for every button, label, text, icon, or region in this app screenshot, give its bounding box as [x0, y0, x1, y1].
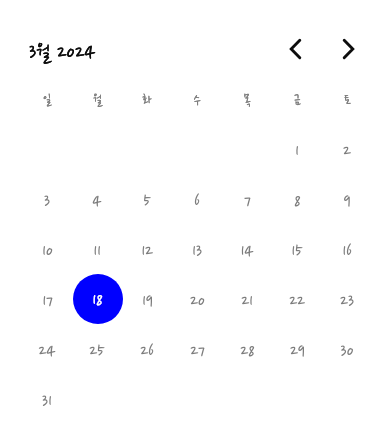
button[interactable]: 26 — [122, 325, 172, 375]
button[interactable]: 6 — [172, 175, 222, 225]
staticText: 19 — [142, 292, 153, 312]
button[interactable]: 21 — [222, 275, 272, 325]
staticText: 11 — [93, 242, 101, 262]
button[interactable]: Next month — [328, 28, 369, 69]
staticText: 23 — [340, 292, 354, 312]
staticText: 5 — [143, 192, 151, 212]
staticText: 10 — [42, 242, 53, 262]
staticText: 목 — [244, 93, 251, 108]
staticText: 3 — [44, 192, 50, 212]
staticText: 7 — [244, 192, 251, 212]
button[interactable]: 18 — [72, 275, 122, 325]
staticText: 3월 2024 — [29, 42, 96, 66]
staticText: 18 — [92, 291, 103, 311]
button[interactable]: 19 — [122, 275, 172, 325]
staticText: 31 — [42, 392, 52, 412]
staticText: 26 — [140, 342, 154, 362]
staticText: 20 — [190, 292, 205, 312]
staticText: 14 — [240, 242, 254, 262]
staticText: 16 — [342, 242, 352, 262]
staticText: 3월 2024 — [29, 42, 96, 66]
staticText: 화 — [142, 93, 152, 108]
button[interactable]: 20 — [172, 275, 222, 325]
button[interactable]: 11 — [72, 225, 122, 275]
staticText: 13 — [192, 242, 202, 262]
staticText: 금 — [294, 93, 301, 108]
button[interactable]: 10 — [22, 225, 72, 275]
button[interactable]: 12 — [122, 225, 172, 275]
staticText: 12 — [141, 242, 153, 262]
button[interactable]: 5 — [122, 175, 172, 225]
staticText: 수 — [194, 93, 201, 108]
button[interactable]: 14 — [222, 225, 272, 275]
button[interactable]: 9 — [322, 175, 372, 225]
button[interactable]: 4 — [72, 175, 122, 225]
staticText: 목 — [244, 93, 251, 108]
button[interactable]: 22 — [272, 275, 322, 325]
staticText: 17 — [42, 292, 53, 312]
staticText: 29 — [290, 342, 305, 362]
button[interactable]: 25 — [72, 325, 122, 375]
button[interactable]: 17 — [22, 275, 72, 325]
button[interactable]: 1 — [272, 125, 322, 175]
button[interactable]: 2 — [322, 125, 372, 175]
button[interactable]: 27 — [172, 325, 222, 375]
staticText: 1 — [295, 142, 299, 162]
staticText: 토 — [344, 93, 351, 108]
button[interactable]: 13 — [172, 225, 222, 275]
staticText: 토 — [344, 93, 351, 108]
staticText: 30 — [340, 342, 354, 362]
staticText: 22 — [289, 292, 305, 312]
staticText: 화 — [142, 93, 152, 108]
staticText: 27 — [190, 342, 205, 362]
staticText: 6 — [194, 192, 200, 212]
button[interactable]: 7 — [222, 175, 272, 225]
button[interactable]: Previous month — [275, 28, 316, 69]
button[interactable]: 16 — [322, 225, 372, 275]
staticText: 일 — [43, 93, 51, 108]
staticText: 일 — [43, 93, 51, 108]
staticText: 28 — [240, 342, 255, 362]
staticText: 9 — [343, 192, 351, 212]
button[interactable]: 15 — [272, 225, 322, 275]
button[interactable]: 3 — [22, 175, 72, 225]
staticText: 월 — [93, 93, 102, 108]
staticText: 3월 2024 — [29, 42, 96, 66]
button[interactable]: 28 — [222, 325, 272, 375]
staticText: 4 — [92, 192, 102, 212]
button[interactable]: 24 — [22, 325, 72, 375]
button[interactable]: 31 — [22, 375, 72, 425]
button[interactable]: 23 — [322, 275, 372, 325]
staticText: 금 — [294, 93, 301, 108]
button[interactable]: 29 — [272, 325, 322, 375]
staticText: 25 — [89, 342, 105, 362]
staticText: 8 — [294, 192, 301, 212]
button[interactable]: 3월 2024 — [20, 30, 140, 66]
staticText: 2 — [343, 142, 351, 162]
button[interactable]: 8 — [272, 175, 322, 225]
button[interactable]: 30 — [322, 325, 372, 375]
staticText: 21 — [241, 292, 253, 312]
staticText: 15 — [291, 242, 303, 262]
staticText: 24 — [38, 342, 56, 362]
staticText: 수 — [194, 93, 201, 108]
staticText: 월 — [93, 93, 102, 108]
